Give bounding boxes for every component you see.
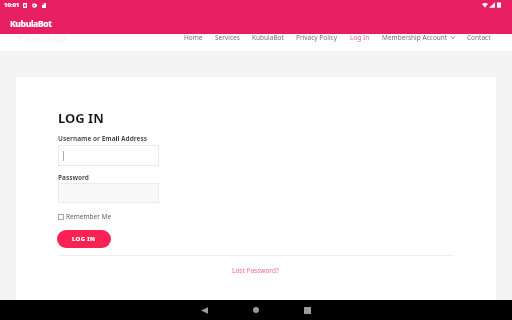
staticText: KUBULA BOT — [25, 35, 67, 44]
staticText: Username or Email Address — [58, 134, 147, 143]
staticText: Privacy Policy — [296, 33, 338, 42]
button[interactable] — [58, 145, 159, 166]
button[interactable]: Remember Me — [58, 212, 112, 221]
staticText: Services — [215, 33, 240, 42]
button[interactable]: Log In — [344, 31, 376, 44]
staticText: KubulaBot — [10, 18, 52, 30]
staticText: LOG IN — [58, 109, 104, 127]
staticText: Contact — [467, 33, 491, 42]
button[interactable]: Back — [192, 300, 216, 320]
button[interactable]: Home — [178, 31, 209, 44]
staticText: Password — [58, 173, 89, 182]
staticText: Log In — [350, 33, 370, 42]
staticText: LOG IN — [72, 235, 96, 243]
button[interactable]: Membership Account — [376, 31, 461, 44]
staticText: Remember Me — [66, 212, 112, 221]
button[interactable]: Home — [244, 300, 268, 320]
staticText: KubulaBot — [252, 33, 284, 42]
button[interactable]: LOG IN — [57, 230, 111, 248]
button[interactable]: Contact — [461, 31, 497, 44]
button[interactable]: Lost Password? — [232, 266, 279, 275]
staticText: Home — [184, 33, 203, 42]
button[interactable] — [58, 183, 159, 203]
button[interactable]: Recent apps — [295, 300, 319, 320]
staticText: 10:01 — [4, 1, 20, 9]
button[interactable]: Services — [209, 31, 246, 44]
staticText: Lost Password? — [232, 266, 279, 275]
button[interactable]: Privacy Policy — [290, 31, 344, 44]
button[interactable]: KubulaBot — [10, 18, 52, 30]
button[interactable]: KubulaBot — [246, 31, 290, 44]
staticText: Membership Account — [382, 33, 448, 42]
